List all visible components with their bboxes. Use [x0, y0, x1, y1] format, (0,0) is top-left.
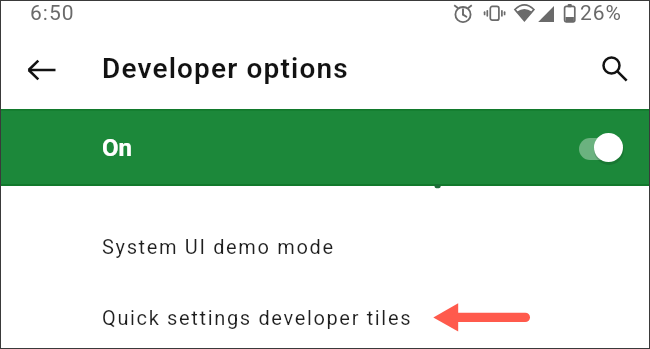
staticText: On	[102, 134, 132, 162]
staticText: Developer options	[102, 52, 349, 85]
button[interactable]: Navigate up	[18, 46, 66, 94]
button[interactable]: Search	[592, 46, 638, 92]
button[interactable]: System UI demo mode	[0, 186, 650, 253]
button[interactable]: Quick settings developer tiles	[0, 253, 650, 323]
staticText: System UI demo mode	[102, 235, 335, 258]
button[interactable]: On	[0, 109, 650, 186]
staticText: 6:50	[30, 1, 75, 26]
staticText: 26%	[580, 1, 622, 26]
staticText: Quick settings developer tiles	[102, 306, 413, 329]
